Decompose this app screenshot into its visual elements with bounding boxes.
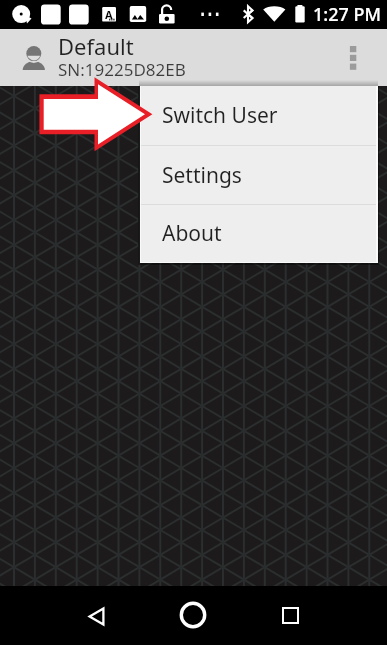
staticText: 1:27 PM: [313, 2, 381, 27]
staticText: Default: [58, 31, 134, 61]
staticText: About: [162, 219, 222, 248]
staticText: SN:19225D82EB: [58, 58, 186, 81]
staticText: A: [105, 7, 113, 19]
button[interactable]: Switch User: [141, 86, 376, 145]
button[interactable]: About: [141, 205, 376, 262]
staticText: Settings: [162, 161, 242, 190]
button[interactable]: More options: [332, 29, 377, 86]
button[interactable]: Recents: [266, 591, 314, 639]
staticText: Switch User: [162, 101, 278, 130]
button[interactable]: Settings: [141, 146, 376, 204]
button[interactable]: Home: [169, 591, 217, 639]
button[interactable]: Back: [72, 592, 120, 640]
